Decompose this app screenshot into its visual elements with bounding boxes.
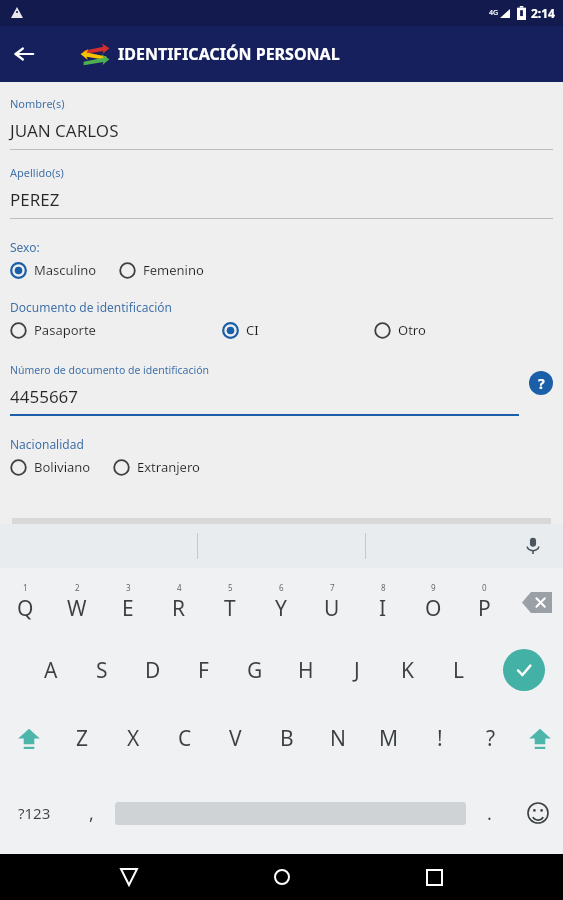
staticText: 2 [75, 582, 80, 593]
button[interactable]: 8 [357, 568, 408, 636]
button[interactable]: B [261, 704, 312, 772]
staticText: ? [538, 374, 545, 393]
staticText: 2:14 [531, 5, 555, 21]
button[interactable]: CI [222, 319, 259, 341]
button[interactable]: A [25, 636, 76, 704]
staticText: S [96, 656, 108, 685]
staticText: Pasaporte [34, 321, 96, 339]
button[interactable]: G [229, 636, 280, 704]
button[interactable]: V [210, 704, 261, 772]
staticText: V [229, 724, 242, 753]
button[interactable]: 3 [102, 568, 153, 636]
staticText: JUAN CARLOS [10, 119, 119, 142]
button[interactable]: Boliviano [10, 456, 91, 478]
staticText: Sexo: [10, 239, 40, 255]
staticText: Nombre(s) [10, 96, 65, 111]
button[interactable]: Home [258, 854, 306, 900]
staticText: I [379, 594, 387, 623]
staticText: E [122, 594, 134, 623]
staticText: ? [486, 724, 496, 753]
button[interactable]: Shift [0, 704, 57, 772]
button[interactable]: H [280, 636, 331, 704]
staticText: Masculino [34, 261, 97, 279]
staticText: C [178, 724, 192, 753]
button[interactable]: 7 [306, 568, 357, 636]
staticText: 5 [228, 582, 233, 593]
button[interactable]: 0 [459, 568, 510, 636]
staticText: 1 [23, 582, 28, 593]
staticText: R [172, 594, 186, 623]
staticText: D [145, 656, 161, 685]
button[interactable]: Otro [374, 319, 426, 341]
button[interactable]: Emoji [513, 772, 563, 854]
button[interactable]: N [312, 704, 363, 772]
staticText: 3 [126, 582, 131, 593]
staticText: X [127, 724, 140, 753]
button[interactable]: 4 [153, 568, 204, 636]
staticText: , [89, 801, 94, 826]
button[interactable]: Space [115, 772, 466, 854]
button[interactable]: J [331, 636, 382, 704]
staticText: Femenino [143, 261, 204, 279]
button[interactable]: . [466, 772, 513, 854]
staticText: Documento de identificación [10, 299, 172, 315]
button[interactable]: , [68, 772, 115, 854]
button[interactable]: 1 [0, 568, 51, 636]
button[interactable]: Back [0, 30, 48, 78]
staticText: 9 [431, 582, 436, 593]
button[interactable]: Pasaporte [10, 319, 96, 341]
staticText: M [379, 724, 399, 753]
button[interactable]: 9 [408, 568, 459, 636]
button[interactable]: ? [465, 704, 516, 772]
button[interactable]: D [127, 636, 178, 704]
staticText: H [298, 656, 314, 685]
staticText: Q [17, 594, 34, 623]
button[interactable]: Back [105, 854, 153, 900]
button[interactable]: Recents [410, 854, 458, 900]
staticText: 0 [482, 582, 487, 593]
button[interactable]: Backspace [510, 568, 563, 636]
button[interactable]: L [433, 636, 484, 704]
staticText: 6 [279, 582, 284, 593]
staticText: P [478, 594, 491, 623]
button[interactable]: Masculino [10, 259, 97, 281]
staticText: Z [76, 724, 89, 753]
staticText: A [44, 656, 58, 685]
staticText: 8 [381, 582, 386, 593]
button[interactable]: M [363, 704, 414, 772]
button[interactable]: S [76, 636, 127, 704]
button[interactable]: F [178, 636, 229, 704]
staticText: O [425, 594, 442, 623]
button[interactable]: Extranjero [113, 456, 200, 478]
button[interactable]: 2 [51, 568, 102, 636]
button[interactable]: Z [57, 704, 108, 772]
button[interactable]: ! [414, 704, 465, 772]
staticText: F [198, 656, 209, 685]
staticText: . [487, 801, 492, 826]
staticText: T [224, 594, 236, 623]
staticText: Número de documento de identificación [10, 363, 209, 377]
staticText: G [247, 656, 263, 685]
staticText: Boliviano [34, 458, 91, 476]
button[interactable]: 6 [255, 568, 306, 636]
button[interactable]: ?123 [0, 772, 68, 854]
staticText: ! [437, 724, 443, 753]
button[interactable]: Shift [516, 704, 563, 772]
staticText: 4 [177, 582, 182, 593]
button[interactable]: 5 [204, 568, 255, 636]
button[interactable]: Help [529, 371, 553, 395]
button[interactable]: C [159, 704, 210, 772]
button[interactable]: Femenino [119, 259, 204, 281]
button[interactable]: Voice input [519, 532, 547, 560]
button[interactable]: Enter [484, 636, 563, 704]
staticText: N [330, 724, 346, 753]
staticText: K [401, 656, 414, 685]
staticText: Otro [398, 321, 426, 339]
button[interactable]: X [108, 704, 159, 772]
staticText: Nacionalidad [10, 436, 84, 452]
staticText: IDENTIFICACIÓN PERSONAL [118, 43, 340, 65]
staticText: Extranjero [137, 458, 200, 476]
staticText: 4G [489, 8, 499, 18]
button[interactable]: K [382, 636, 433, 704]
staticText: PEREZ [10, 188, 60, 211]
